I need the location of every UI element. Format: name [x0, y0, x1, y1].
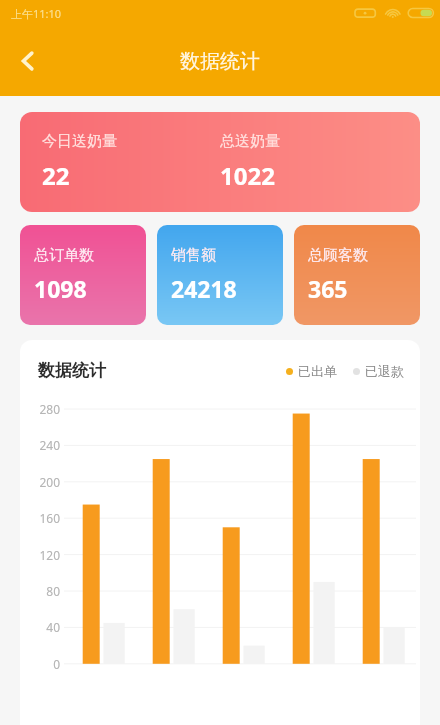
staticText: 200	[20, 474, 60, 490]
staticText: 销售额	[171, 246, 216, 265]
button[interactable]: 总订单数	[20, 225, 146, 325]
staticText: 已出单	[298, 363, 337, 379]
staticText: 280	[20, 401, 60, 417]
staticText: 120	[20, 547, 60, 563]
staticText: 80	[20, 583, 60, 599]
staticText: 已退款	[365, 363, 404, 379]
button[interactable]: Back	[0, 33, 56, 89]
staticText: 今日送奶量	[42, 132, 117, 151]
button[interactable]: 今日送奶量	[20, 112, 420, 212]
staticText: 40	[20, 619, 60, 635]
staticText: 240	[20, 437, 60, 453]
button[interactable]: 已退款	[353, 363, 404, 379]
button[interactable]: 已出单	[286, 363, 337, 379]
button[interactable]: 总顾客数	[294, 225, 420, 325]
staticText: 总送奶量	[220, 132, 280, 151]
button[interactable]: 销售额	[157, 225, 283, 325]
staticText: 22	[42, 159, 70, 192]
staticText: 1098	[34, 273, 87, 304]
staticText: 24218	[171, 273, 237, 304]
staticText: 数据统计	[180, 49, 260, 74]
staticText: 1022	[220, 159, 275, 192]
staticText: 160	[20, 510, 60, 526]
staticText: 总订单数	[34, 246, 94, 265]
staticText: 数据统计	[38, 360, 106, 381]
staticText: 0	[20, 656, 60, 672]
staticText: 365	[308, 273, 348, 304]
staticText: 上午11:10	[11, 6, 62, 21]
staticText: 总顾客数	[308, 246, 368, 265]
